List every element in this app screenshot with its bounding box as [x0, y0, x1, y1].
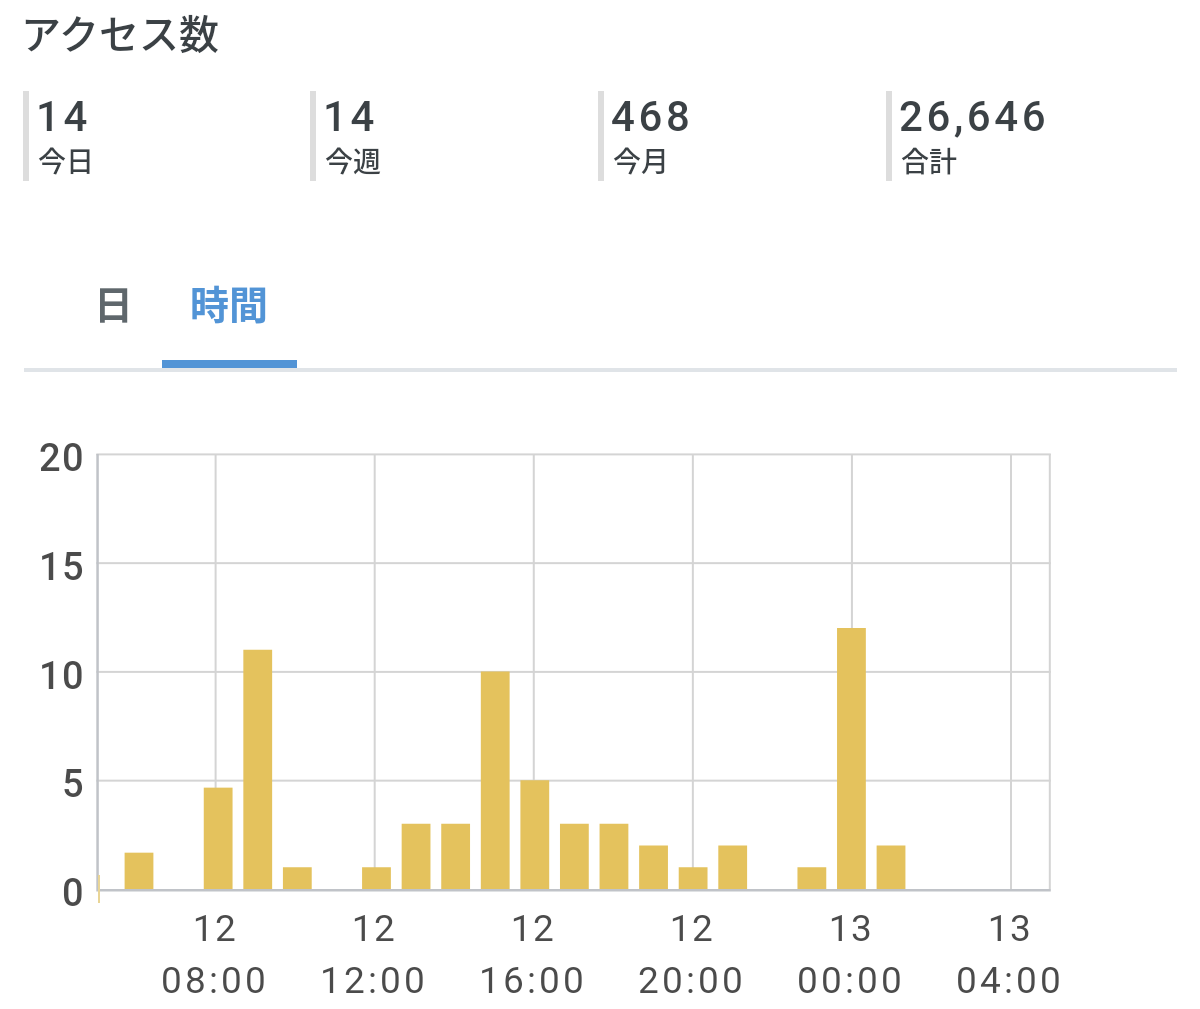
button[interactable]: 14	[310, 89, 590, 185]
staticText: 12	[125, 907, 305, 950]
staticText: 12	[602, 907, 782, 950]
staticText: 時間	[190, 274, 269, 330]
staticText: 今週	[325, 140, 382, 181]
staticText: 今日	[38, 140, 95, 181]
staticText: 13	[761, 907, 941, 950]
staticText: 今月	[613, 140, 670, 181]
staticText: 12:00	[284, 959, 464, 1002]
staticText: 00:00	[761, 959, 941, 1002]
staticText: 5	[62, 762, 86, 807]
button[interactable]: 時間	[162, 246, 297, 358]
staticText: 12	[443, 907, 623, 950]
button[interactable]: 26,646	[886, 89, 1166, 185]
staticText: 26,646	[899, 92, 1050, 141]
staticText: 20:00	[602, 959, 782, 1002]
staticText: 14	[36, 92, 91, 141]
button[interactable]: 日	[46, 246, 182, 358]
staticText: 13	[920, 907, 1100, 950]
staticText: アクセス数	[21, 3, 219, 61]
staticText: 12	[284, 907, 464, 950]
button[interactable]: 14	[23, 89, 303, 185]
staticText: 15	[39, 545, 86, 590]
staticText: 16:00	[443, 959, 623, 1002]
staticText: 468	[611, 92, 694, 141]
staticText: 04:00	[920, 959, 1100, 1002]
staticText: 08:00	[125, 959, 305, 1002]
staticText: 0	[62, 871, 86, 916]
staticText: 14	[323, 92, 378, 141]
button[interactable]: 468	[598, 89, 878, 185]
staticText: 20	[39, 436, 86, 481]
staticText: 10	[39, 654, 86, 699]
staticText: 日	[94, 274, 134, 330]
staticText: 合計	[901, 140, 958, 181]
